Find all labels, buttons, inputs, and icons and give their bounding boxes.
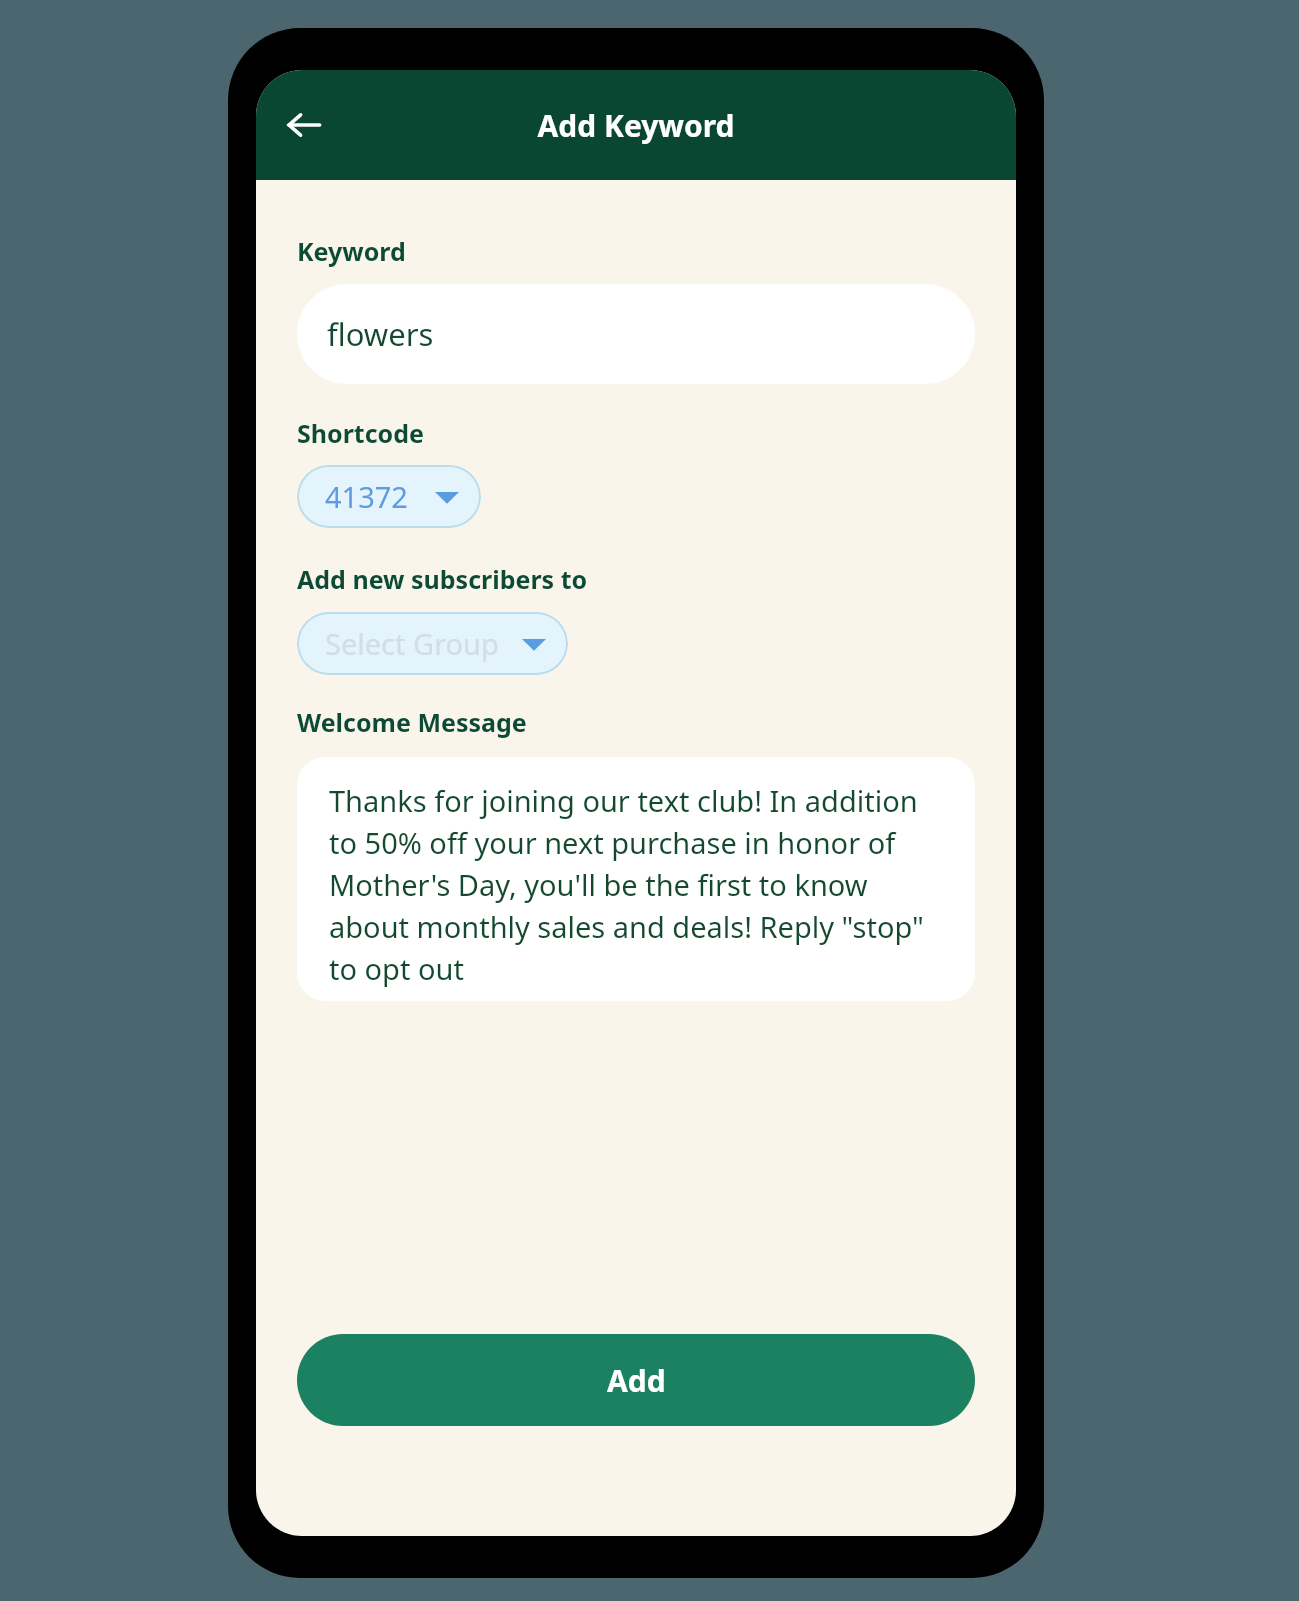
staticText: flowers [327, 313, 434, 355]
button[interactable]: flowers [297, 284, 975, 384]
staticText: Add Keyword [537, 105, 735, 146]
staticText: Select Group [325, 624, 499, 663]
button[interactable]: 41372 [297, 465, 481, 528]
staticText: Welcome Message [297, 705, 527, 739]
button[interactable]: Back [272, 93, 336, 157]
staticText: Add [607, 1360, 666, 1401]
staticText: 41372 [325, 477, 408, 516]
staticText: Thanks for joining our text club! In add… [329, 781, 951, 988]
staticText: Shortcode [297, 416, 424, 450]
button[interactable]: Add [297, 1334, 975, 1426]
button[interactable]: Select Group [297, 612, 568, 675]
staticText: Keyword [297, 234, 406, 268]
other: Open dropdown [522, 636, 546, 652]
button[interactable]: Thanks for joining our text club! In add… [297, 757, 975, 1001]
other: Open dropdown [435, 489, 459, 505]
staticText: Add new subscribers to [297, 562, 588, 596]
